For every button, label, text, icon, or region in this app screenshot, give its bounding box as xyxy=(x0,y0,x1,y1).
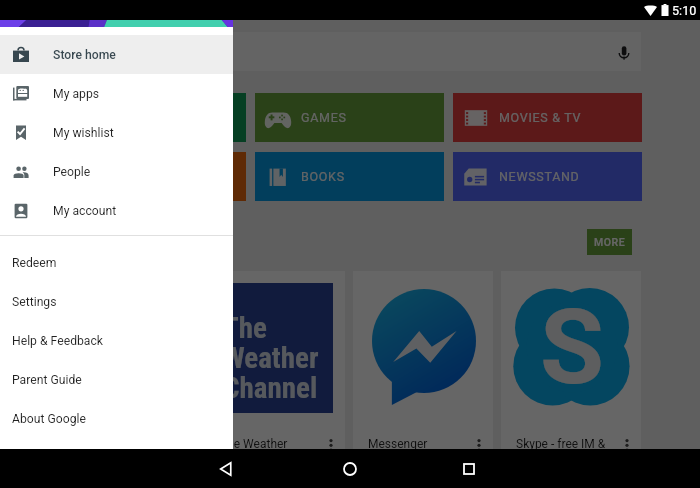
button[interactable]: Parent Guide xyxy=(0,360,233,399)
button[interactable]: Voice search xyxy=(616,45,632,61)
button[interactable]: My account xyxy=(0,191,233,230)
button[interactable]: Messenger xyxy=(353,271,493,449)
button[interactable]: Recents xyxy=(449,449,488,488)
staticText: Store home xyxy=(53,48,116,62)
staticText: NEWSSTAND xyxy=(499,169,580,184)
button[interactable]: More options xyxy=(620,437,634,451)
button[interactable]: Help & Feedback xyxy=(0,321,233,360)
staticText: Help & Feedback xyxy=(12,334,104,348)
staticText: 5:10 xyxy=(672,3,697,18)
staticText: BOOKS xyxy=(301,169,345,184)
staticText: S xyxy=(540,287,605,403)
staticText: My apps xyxy=(53,87,100,101)
button[interactable]: Back xyxy=(206,449,245,488)
button[interactable]: APPS xyxy=(57,93,246,142)
staticText: MORE xyxy=(594,236,626,248)
staticText: People xyxy=(53,165,91,179)
button[interactable]: Voice search xyxy=(57,32,641,71)
button[interactable]: GAMES xyxy=(255,93,444,142)
staticText: The Weather xyxy=(220,437,288,451)
staticText: Settings xyxy=(12,295,57,309)
staticText: About Google xyxy=(12,412,86,426)
button[interactable]: About Google xyxy=(0,399,233,438)
button[interactable]: MOVIES & TV xyxy=(453,93,642,142)
staticText: Skype - free IM & xyxy=(516,437,606,451)
staticText: GAMES xyxy=(301,110,347,125)
button[interactable]: People xyxy=(0,152,233,191)
button[interactable]: Redeem xyxy=(0,243,233,282)
button[interactable]: Home xyxy=(330,449,369,488)
button[interactable]: Store home xyxy=(0,35,233,74)
staticText: Redeem xyxy=(12,256,57,270)
staticText: MOVIES & TV xyxy=(499,110,582,125)
button[interactable]: My wishlist xyxy=(0,113,233,152)
staticText: My account xyxy=(53,204,117,218)
button[interactable]: Settings xyxy=(0,282,233,321)
button[interactable]: More options xyxy=(472,437,486,451)
button[interactable]: More options xyxy=(176,437,190,451)
staticText: My wishlist xyxy=(53,126,114,140)
button[interactable]: MORE xyxy=(587,229,632,255)
button[interactable]: Candy Crush S xyxy=(57,271,197,449)
staticText: Candy Crush S xyxy=(72,437,150,451)
button[interactable]: MUSIC xyxy=(57,152,246,201)
button[interactable]: NEWSSTAND xyxy=(453,152,642,201)
staticText: Parent Guide xyxy=(12,373,82,387)
button[interactable]: BOOKS xyxy=(255,152,444,201)
button[interactable]: My apps xyxy=(0,74,233,113)
button[interactable]: More options xyxy=(324,437,338,451)
button[interactable]: The Weather Channel xyxy=(205,271,345,449)
staticText: The Weather Channel xyxy=(223,311,319,405)
staticText: Messenger xyxy=(368,437,428,451)
button[interactable]: S xyxy=(501,271,641,449)
